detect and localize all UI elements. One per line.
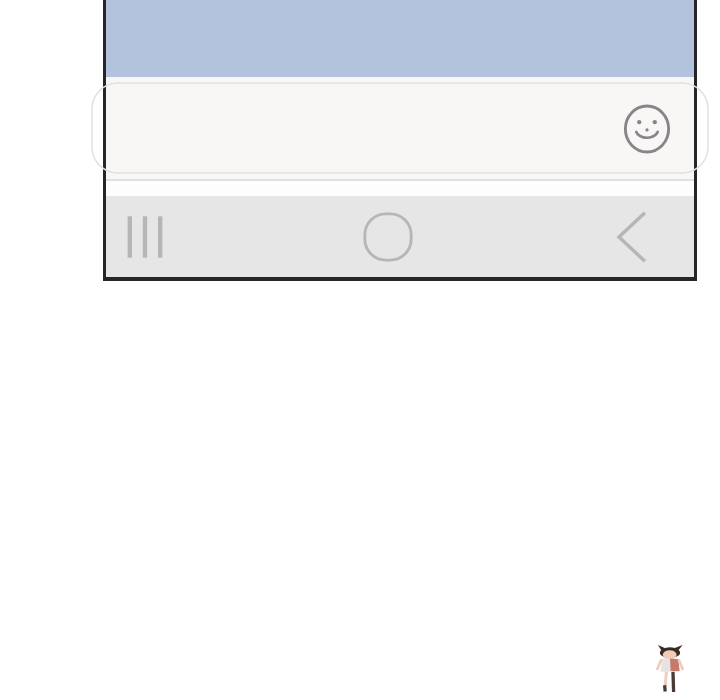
button[interactable]: Recent apps (112, 204, 178, 270)
button[interactable]: Insert emoji (623, 105, 671, 153)
button[interactable]: Home (355, 204, 421, 270)
button[interactable]: Back (598, 204, 664, 270)
